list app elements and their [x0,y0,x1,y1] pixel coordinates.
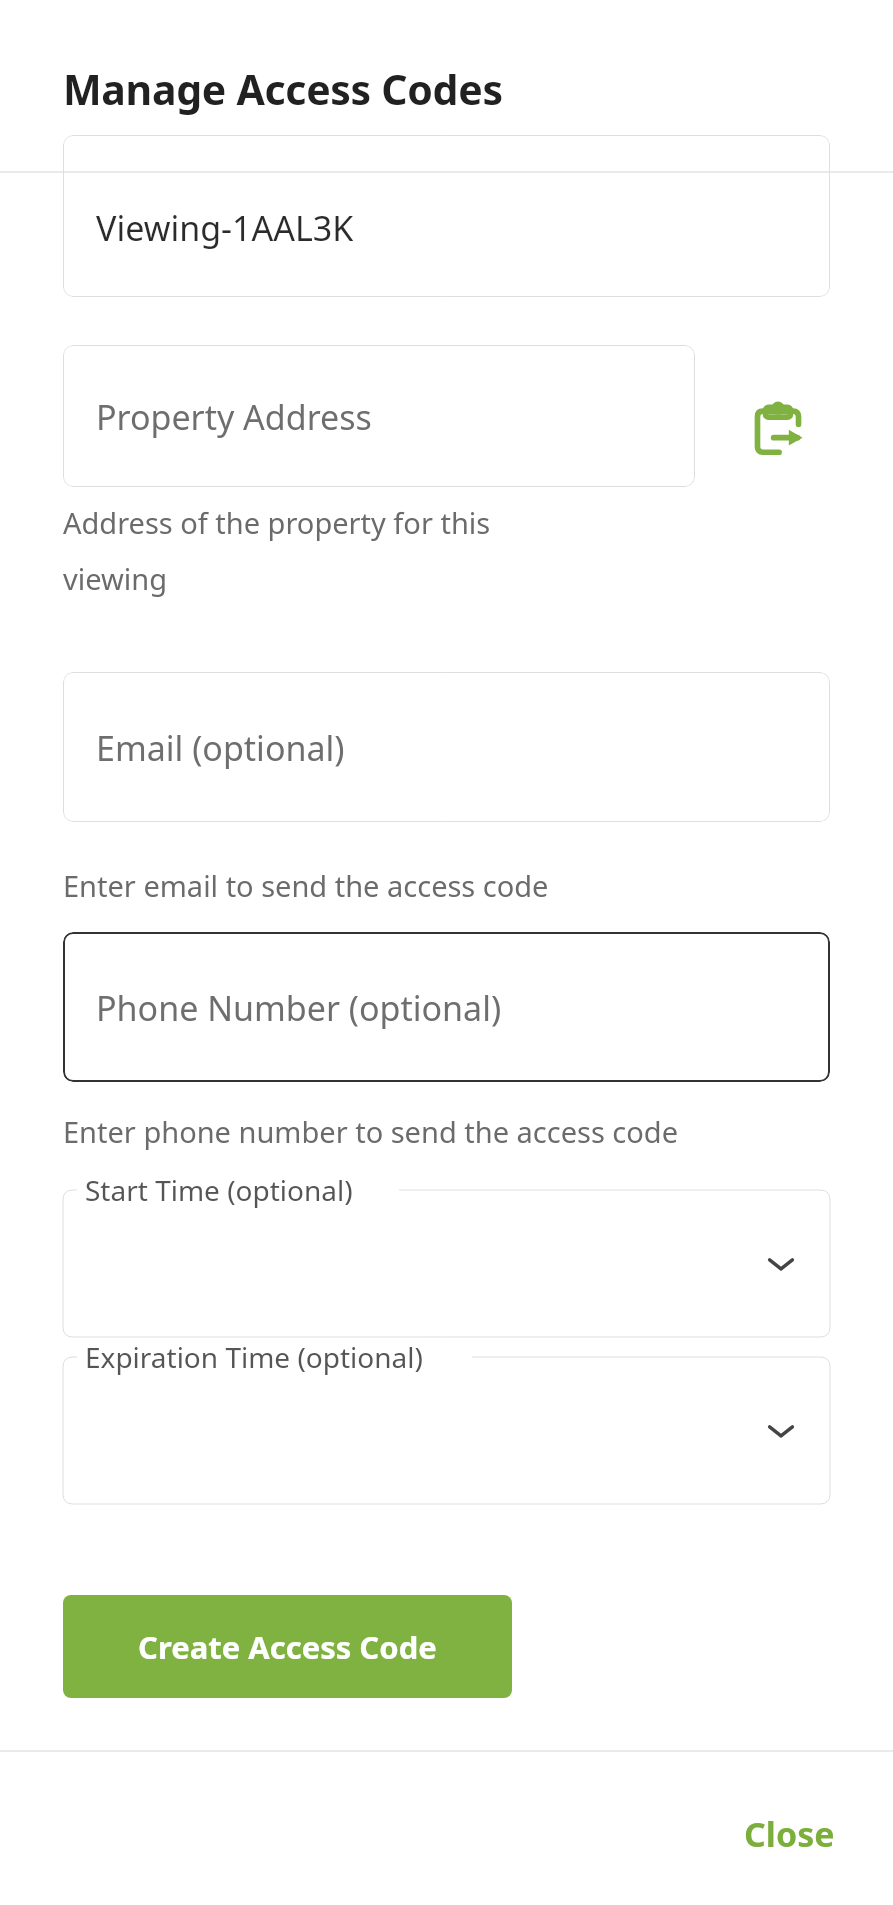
staticText: viewing [63,559,168,598]
staticText: Viewing-1AAL3K [96,205,354,251]
staticText: Close [744,1811,835,1857]
staticText: Enter phone number to send the access co… [63,1112,679,1151]
staticText: Property Address [96,394,372,440]
staticText: Create Access Code [138,1626,437,1668]
staticText: Address of the property for this [63,503,491,542]
button[interactable]: Close [732,1801,847,1867]
button[interactable]: Expiration Time (optional) [63,1357,830,1504]
staticText: Start Time (optional) [85,1171,353,1209]
staticText: Manage Access Codes [63,61,503,117]
button[interactable]: Phone Number (optional) [63,932,830,1082]
staticText: Enter email to send the access code [63,866,549,905]
staticText: Expiration Time (optional) [85,1338,423,1376]
button[interactable]: Viewing-1AAL3K [63,135,830,297]
button[interactable]: Property Address [63,345,695,487]
button[interactable]: Start Time (optional) [63,1190,830,1337]
button[interactable]: Email (optional) [63,672,830,822]
staticText: Phone Number (optional) [96,985,502,1031]
staticText: Email (optional) [96,725,345,771]
button[interactable]: Paste address [744,395,812,463]
button[interactable]: Create Access Code [63,1595,512,1698]
